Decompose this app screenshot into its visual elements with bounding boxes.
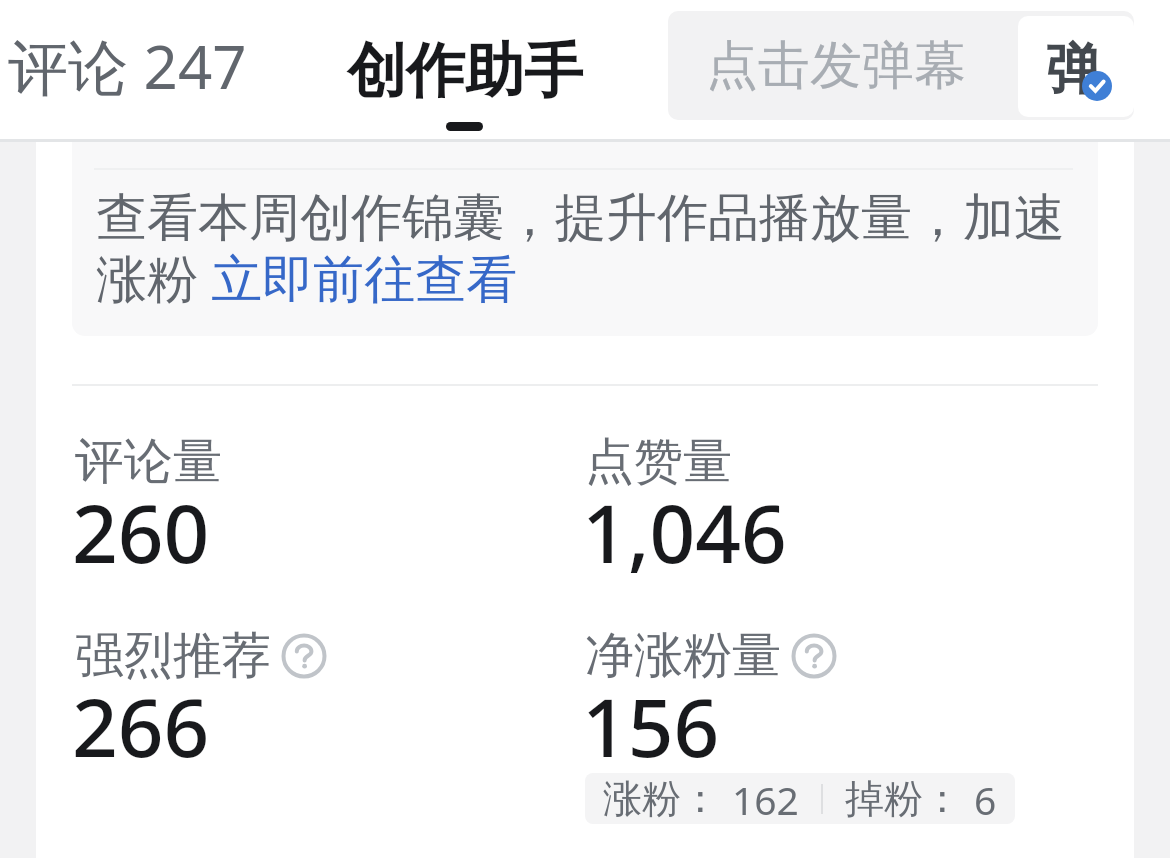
other: 说明 [792,634,836,678]
staticText: 156 [582,671,720,780]
button[interactable]: 评论 247 [0,0,255,136]
other: 说明 [282,634,326,678]
button[interactable]: 点赞量 [585,431,1085,602]
staticText: 查看本周创作锦囊，提升作品播放量，加速涨粉 立即前往查看 [96,186,1098,312]
staticText: 1,046 [582,477,787,586]
staticText: 强烈推荐 [75,625,271,687]
staticText: 260 [72,477,210,586]
button[interactable]: 净涨粉量 [585,625,1085,847]
staticText: 弹 [1046,35,1101,104]
staticText: 掉粉： [845,774,962,823]
button[interactable]: 弹幕设置 [1018,16,1134,117]
staticText: 162 [732,773,799,824]
staticText: 净涨粉量 [585,625,781,687]
button[interactable]: 强烈推荐 [75,625,575,796]
staticText: 266 [72,671,210,780]
button[interactable]: 创作助手 [347,0,583,141]
staticText: 6 [974,773,997,824]
button[interactable]: 查看本周创作锦囊，提升作品播放量，加速涨粉 立即前往查看 [72,108,1098,336]
staticText: 涨粉： [603,774,720,823]
button[interactable]: 评论量 [75,431,575,602]
button[interactable]: 点击发弹幕 [668,11,1134,120]
staticText: 点赞量 [585,431,732,493]
staticText: 创作助手 [347,34,583,108]
button[interactable]: 涨粉： [585,773,1015,824]
staticText: 评论 247 [8,25,247,107]
staticText: 点击发弹幕 [706,33,966,99]
staticText: 评论量 [75,431,222,493]
